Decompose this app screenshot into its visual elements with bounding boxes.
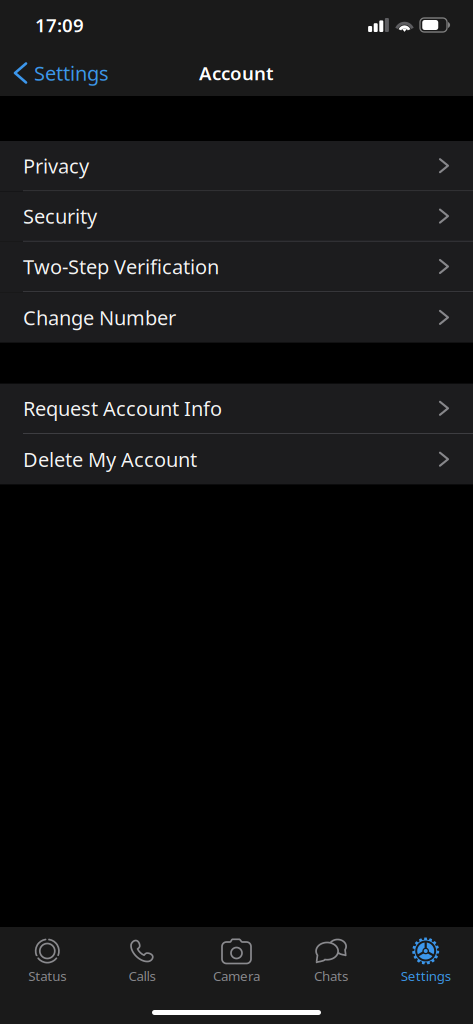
staticText: Settings (401, 967, 451, 985)
button[interactable]: Calls (95, 927, 189, 997)
button[interactable]: Security (0, 191, 473, 242)
button[interactable]: Delete My Account (0, 434, 473, 484)
staticText: Change Number (23, 304, 176, 331)
button[interactable]: Request Account Info (0, 384, 473, 434)
staticText: Two-Step Verification (23, 253, 219, 280)
staticText: Chats (314, 967, 348, 985)
button[interactable]: Settings (0, 51, 117, 95)
staticText: Delete My Account (23, 446, 197, 472)
button[interactable]: Change Number (0, 292, 473, 343)
staticText: Security (23, 203, 97, 229)
button[interactable]: Chats (284, 927, 378, 997)
staticText: Request Account Info (23, 395, 222, 422)
staticText: Account (199, 61, 274, 85)
staticText: 17:09 (35, 13, 84, 37)
staticText: Camera (213, 967, 260, 985)
staticText: Privacy (23, 152, 89, 179)
staticText: Settings (34, 60, 109, 86)
button[interactable]: Settings (378, 927, 473, 997)
staticText: Status (28, 967, 66, 985)
button[interactable]: Privacy (0, 141, 473, 191)
button[interactable]: Status (0, 927, 95, 997)
button[interactable]: Camera (189, 927, 284, 997)
staticText: Calls (128, 967, 155, 985)
button[interactable]: Two-Step Verification (0, 242, 473, 292)
